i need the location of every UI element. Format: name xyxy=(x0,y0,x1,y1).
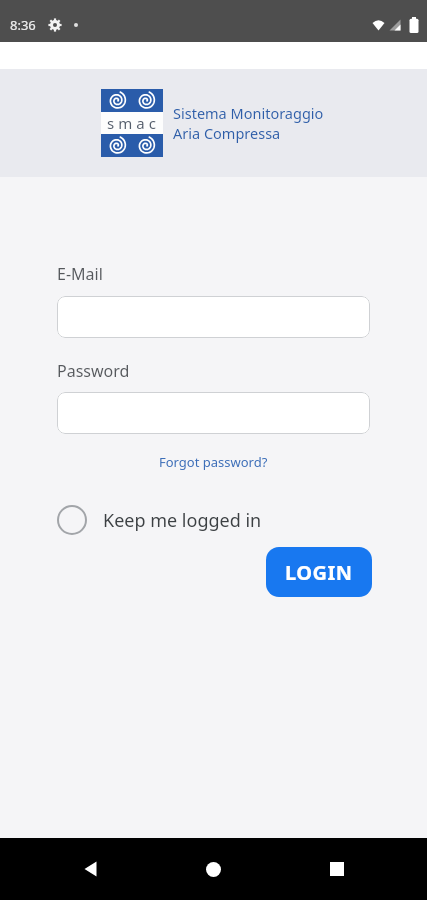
staticText: Keep me logged in xyxy=(103,508,262,533)
staticText: Password xyxy=(57,360,130,382)
staticText: LOGIN xyxy=(285,559,353,586)
staticText: 8:36 xyxy=(10,16,36,34)
button[interactable] xyxy=(313,845,361,893)
button[interactable]: Keep me logged in xyxy=(57,505,262,535)
button[interactable] xyxy=(67,845,115,893)
staticText: Sistema Monitoraggio xyxy=(173,103,324,123)
button[interactable]: Forgot password? xyxy=(159,453,268,471)
button[interactable]: LOGIN xyxy=(266,547,372,597)
button[interactable] xyxy=(189,845,237,893)
button[interactable] xyxy=(57,392,370,434)
staticText: smac xyxy=(107,113,160,133)
staticText: Aria Compressa xyxy=(173,123,281,143)
button[interactable] xyxy=(57,296,370,338)
staticText: E-Mail xyxy=(57,263,103,285)
